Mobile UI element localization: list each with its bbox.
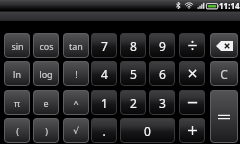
staticText: 3	[159, 95, 166, 111]
button[interactable]: √	[63, 118, 89, 143]
staticText: 9	[159, 38, 166, 54]
button[interactable]: ^	[63, 90, 89, 115]
button[interactable]: sin	[4, 33, 30, 58]
button[interactable]: 9	[149, 33, 175, 58]
staticText: 5	[130, 66, 137, 82]
button[interactable]: Minus	[179, 90, 205, 115]
staticText: 2	[130, 95, 137, 111]
staticText: tan	[69, 40, 83, 52]
staticText: !	[75, 68, 78, 80]
staticText: .	[102, 123, 106, 139]
button[interactable]: 2	[120, 90, 146, 115]
staticText: e	[43, 97, 49, 109]
staticText: ^	[73, 97, 79, 109]
staticText: 11:14	[219, 0, 240, 11]
staticText: 6	[159, 66, 166, 82]
staticText: √	[73, 126, 79, 136]
staticText: 0	[144, 123, 151, 139]
button[interactable]: ln	[4, 61, 30, 86]
button[interactable]: Multiply	[179, 61, 205, 86]
button[interactable]: π	[4, 90, 30, 115]
staticText: ln	[13, 68, 21, 80]
button[interactable]: Backspace	[210, 33, 238, 58]
button[interactable]: cos	[33, 33, 59, 58]
button[interactable]: 4	[91, 61, 117, 86]
button[interactable]: (	[4, 118, 30, 143]
button[interactable]: tan	[63, 33, 89, 58]
button[interactable]: 7	[91, 33, 117, 58]
button[interactable]: 6	[149, 61, 175, 86]
staticText: π	[14, 97, 20, 109]
button[interactable]: Equals	[210, 90, 238, 143]
button[interactable]: .	[91, 118, 117, 143]
button[interactable]: )	[33, 118, 59, 143]
staticText: cos	[39, 40, 54, 52]
button[interactable]: !	[63, 61, 89, 86]
button[interactable]: log	[33, 61, 59, 86]
button[interactable]: 3	[149, 90, 175, 115]
staticText: 8	[130, 38, 137, 54]
button[interactable]: 8	[120, 33, 146, 58]
staticText: 1	[101, 95, 108, 111]
button[interactable]: e	[33, 90, 59, 115]
staticText: 7	[101, 38, 108, 54]
staticText: )	[45, 125, 48, 137]
staticText: log	[39, 68, 53, 80]
button[interactable]: C	[210, 61, 238, 86]
button[interactable]: 1	[91, 90, 117, 115]
button[interactable]: Divide	[179, 33, 205, 58]
staticText: 4	[101, 66, 108, 82]
staticText: C	[220, 66, 228, 82]
button[interactable]: 0	[120, 118, 175, 143]
button[interactable]: Plus	[179, 118, 205, 143]
staticText: (	[16, 125, 19, 137]
staticText: sin	[11, 40, 24, 52]
button[interactable]: 5	[120, 61, 146, 86]
